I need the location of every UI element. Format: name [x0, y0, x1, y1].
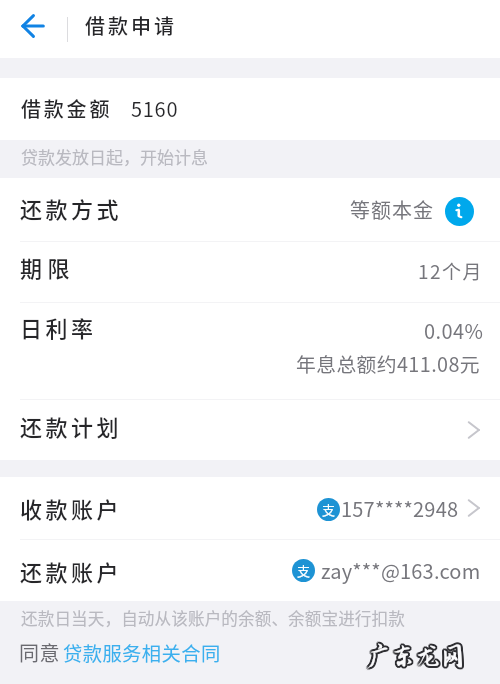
staticText: 广东龙网 [365, 641, 466, 669]
staticText: 广东龙网 [363, 641, 464, 669]
staticText: 等额本金 [350, 195, 434, 224]
staticText: 广东龙网 [366, 643, 467, 671]
staticText: zay***@163.com [321, 556, 481, 585]
staticText: 还款账户 [20, 555, 123, 587]
staticText: 0.04% [424, 316, 484, 345]
button[interactable]: Info [445, 197, 474, 226]
staticText: 还款方式 [20, 192, 123, 224]
staticText: 借款金额 [21, 94, 113, 123]
staticText: 年息总额约411.08元 [296, 349, 481, 378]
staticText: 广东龙网 [366, 641, 467, 669]
staticText: 广东龙网 [364, 643, 465, 671]
staticText: 广东龙网 [364, 640, 465, 668]
staticText: 贷款发放日起，开始计息 [21, 144, 208, 169]
staticText: 还款计划 [20, 410, 123, 442]
staticText: 支 [322, 500, 336, 519]
staticText: 借款申请 [85, 11, 177, 40]
staticText: 广东龙网 [363, 643, 464, 671]
button[interactable]: 收款账户 [0, 477, 500, 539]
staticText: 收款账户 [20, 492, 123, 524]
button[interactable]: 还款账户 [0, 540, 500, 601]
staticText: 广东龙网 [367, 641, 468, 669]
staticText: 广东龙网 [364, 644, 465, 672]
staticText: 广东龙网 [365, 642, 466, 670]
staticText: 广东龙网 [366, 644, 467, 672]
staticText: 广东龙网 [367, 643, 468, 671]
staticText: 支 [297, 561, 311, 580]
staticText: 157****2948 [341, 494, 459, 523]
staticText: 广东龙网 [366, 640, 467, 668]
staticText: 广东龙网 [365, 640, 466, 668]
staticText: 日利率 [20, 311, 97, 343]
staticText: 广东龙网 [365, 643, 466, 671]
staticText: 还款日当天，自动从该账户的余额、余额宝进行扣款 [21, 606, 405, 630]
button[interactable]: 还款计划 [0, 400, 500, 460]
staticText: 广东龙网 [364, 641, 465, 669]
staticText: 同意 [19, 638, 60, 667]
staticText: 期限 [20, 251, 76, 283]
staticText: 5160 [131, 94, 179, 123]
staticText: 广东龙网 [364, 642, 465, 670]
button[interactable]: 贷款服务相关合同 [63, 639, 221, 667]
staticText: 广东龙网 [363, 642, 464, 670]
staticText: 广东龙网 [365, 644, 466, 672]
staticText: 12个月 [418, 257, 484, 285]
staticText: 贷款服务相关合同 [63, 639, 221, 667]
staticText: 广东龙网 [366, 642, 467, 670]
staticText: 广东龙网 [367, 642, 468, 670]
button[interactable]: Back [0, 1, 56, 57]
